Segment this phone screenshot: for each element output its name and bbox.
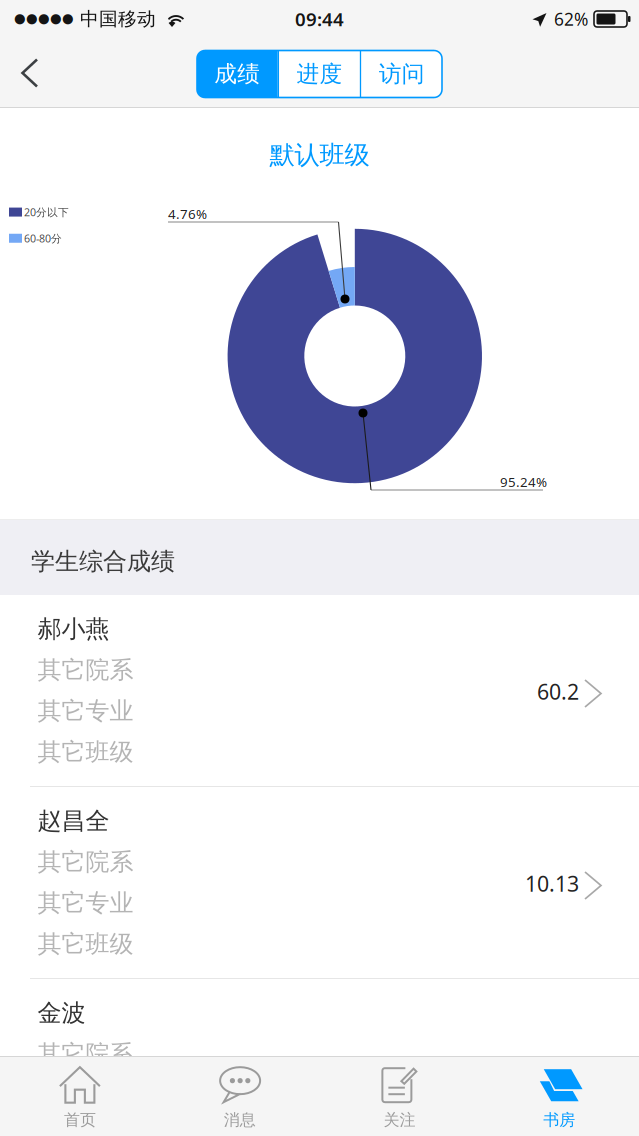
staticText: 其它院系: [37, 655, 133, 685]
staticText: 书房: [543, 1110, 575, 1130]
staticText: 其它班级: [37, 929, 133, 959]
button[interactable]: 郝小燕: [0, 595, 639, 786]
staticText: 其它院系: [37, 1039, 133, 1069]
staticText: 其它班级: [37, 1121, 133, 1136]
staticText: 其它专业: [37, 696, 133, 726]
staticText: 访问: [379, 60, 425, 88]
staticText: 关注: [383, 1110, 415, 1130]
staticText: 首页: [64, 1110, 96, 1130]
staticText: 金波: [37, 998, 85, 1028]
staticText: 学生综合成绩: [31, 547, 175, 576]
staticText: 其它专业: [37, 1080, 133, 1110]
staticText: 进度: [296, 60, 342, 88]
staticText: 成绩: [214, 60, 260, 88]
staticText: 62%: [554, 7, 588, 30]
staticText: 09:44: [295, 7, 344, 31]
button[interactable]: Back: [0, 38, 60, 108]
button[interactable]: 首页: [0, 1056, 160, 1136]
button[interactable]: 书房: [479, 1056, 639, 1136]
staticText: 郝小燕: [37, 614, 109, 644]
staticText: 4.76%: [168, 205, 207, 223]
staticText: 默认班级: [269, 139, 369, 170]
staticText: 60.2: [537, 677, 579, 706]
button[interactable]: 赵昌全: [0, 787, 639, 978]
button[interactable]: 进度: [279, 50, 360, 97]
staticText: 其它专业: [37, 888, 133, 918]
staticText: 60-80分: [24, 231, 62, 245]
button[interactable]: 成绩: [197, 50, 278, 97]
staticText: 其它院系: [37, 847, 133, 877]
button[interactable]: 金波: [0, 979, 639, 1136]
staticText: 其它班级: [37, 737, 133, 767]
button[interactable]: 访问: [361, 50, 442, 97]
staticText: 消息: [224, 1110, 256, 1130]
staticText: 95.24%: [500, 473, 547, 491]
staticText: ●●●●●: [14, 10, 74, 25]
staticText: 20分以下: [24, 205, 69, 219]
staticText: 赵昌全: [37, 806, 109, 836]
staticText: 中国移动: [74, 7, 156, 30]
button[interactable]: 关注: [319, 1056, 479, 1136]
button[interactable]: 消息: [160, 1056, 320, 1136]
staticText: 10.13: [525, 869, 579, 898]
